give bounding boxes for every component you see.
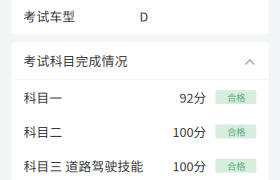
staticText: 考试科目完成情况	[24, 51, 128, 70]
button[interactable]: 科目三 道路驾驶技能	[11, 149, 269, 180]
staticText: 合格	[227, 125, 245, 138]
button[interactable]: 科目二	[11, 114, 269, 149]
staticText: 科目二	[24, 122, 63, 141]
staticText: 科目三 道路驾驶技能	[24, 157, 144, 175]
staticText: 100分	[172, 122, 206, 141]
button[interactable]: 考试科目完成情况	[11, 42, 269, 79]
staticText: 考试车型	[24, 7, 76, 25]
staticText: 合格	[227, 159, 245, 172]
staticText: 合格	[227, 90, 245, 104]
staticText: 科目一	[24, 88, 63, 106]
staticText: 92分	[179, 88, 206, 106]
staticText: 100分	[172, 157, 206, 175]
staticText: D	[140, 7, 149, 25]
button[interactable]: 科目一	[11, 80, 269, 114]
